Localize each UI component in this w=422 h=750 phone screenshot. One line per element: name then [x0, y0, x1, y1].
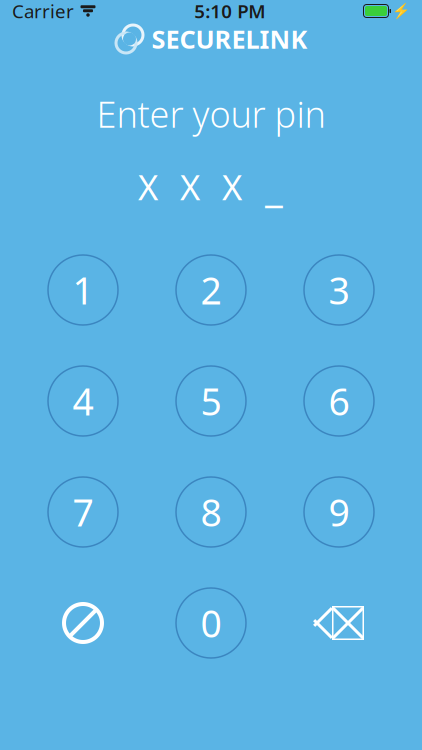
button[interactable]: 7: [48, 477, 118, 547]
staticText: 5:10 PM: [194, 0, 265, 23]
staticText: 7: [72, 487, 93, 537]
staticText: X: [180, 164, 200, 210]
staticText: 4: [72, 376, 93, 426]
staticText: _: [265, 160, 283, 213]
button[interactable]: 5: [176, 366, 246, 436]
button[interactable]: 6: [304, 366, 374, 436]
button[interactable]: 0: [176, 588, 246, 658]
button[interactable]: Cancel: [48, 588, 118, 658]
button[interactable]: Delete: [304, 588, 374, 658]
staticText: 1: [72, 265, 93, 315]
button[interactable]: 4: [48, 366, 118, 436]
button[interactable]: 2: [176, 255, 246, 325]
staticText: X: [222, 164, 242, 210]
staticText: 0: [200, 598, 221, 648]
staticText: 3: [328, 265, 349, 315]
staticText: SECURELINK: [151, 22, 307, 56]
staticText: Enter your pin: [96, 90, 325, 138]
button[interactable]: 8: [176, 477, 246, 547]
staticText: Carrier: [12, 0, 74, 23]
staticText: X: [138, 164, 158, 210]
staticText: 8: [200, 487, 221, 537]
staticText: 2: [200, 265, 221, 315]
staticText: ⚡: [392, 3, 410, 19]
staticText: 5: [200, 376, 221, 426]
staticText: 6: [328, 376, 349, 426]
button[interactable]: 9: [304, 477, 374, 547]
staticText: 9: [328, 487, 349, 537]
button[interactable]: 1: [48, 255, 118, 325]
button[interactable]: 3: [304, 255, 374, 325]
